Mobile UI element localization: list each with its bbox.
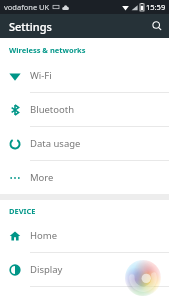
button[interactable]: Wi-Fi <box>0 59 169 92</box>
staticText: Wi-Fi <box>30 69 52 82</box>
button[interactable]: Bluetooth <box>0 93 169 126</box>
staticText: Home <box>30 229 58 242</box>
staticText: Bluetooth <box>30 103 75 116</box>
staticText: DEVICE <box>9 206 36 216</box>
staticText: vodafone UK <box>4 2 50 12</box>
staticText: Wireless & networks <box>9 45 86 55</box>
staticText: Settings <box>9 19 52 34</box>
button[interactable]: Home <box>0 219 169 252</box>
staticText: More <box>30 171 54 184</box>
button[interactable]: More <box>0 161 169 194</box>
staticText: Display <box>30 263 63 276</box>
button[interactable]: Data usage <box>0 127 169 160</box>
button[interactable]: Search <box>145 14 169 38</box>
button[interactable]: Display <box>0 253 169 286</box>
staticText: 15:59 <box>146 2 166 12</box>
staticText: Data usage <box>30 137 81 150</box>
